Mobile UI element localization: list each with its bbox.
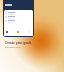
staticText: Build better habits	[5, 46, 21, 48]
button[interactable]	[5, 15, 33, 19]
button[interactable]	[5, 11, 33, 15]
button[interactable]	[5, 19, 33, 23]
staticText: Create your goals	[5, 41, 32, 45]
